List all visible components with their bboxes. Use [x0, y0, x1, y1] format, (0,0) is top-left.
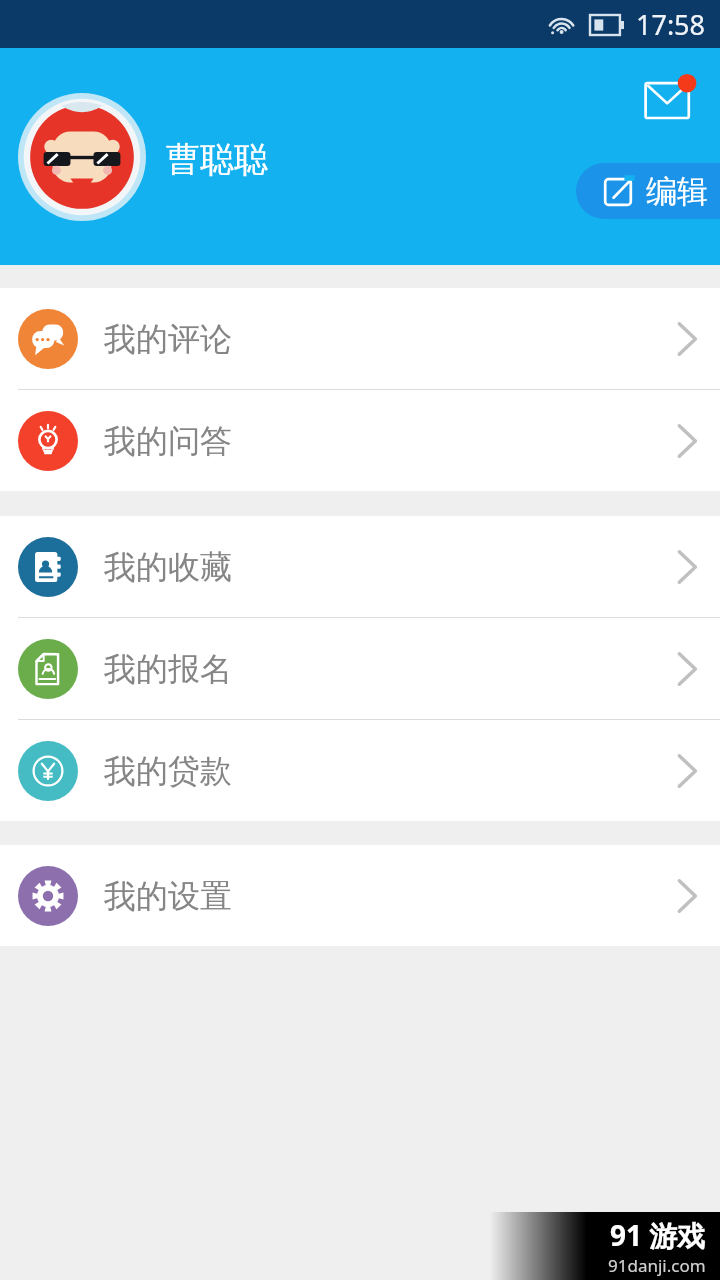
staticText: 我的收藏 [104, 547, 232, 587]
button[interactable]: 我的收藏 [0, 516, 720, 617]
staticText: 17:58 [636, 6, 706, 43]
button[interactable]: Avatar [18, 93, 146, 221]
staticText: 我的问答 [104, 421, 232, 461]
button[interactable]: 编辑 [576, 163, 720, 219]
staticText: 我的贷款 [104, 751, 232, 791]
staticText: 编辑 [646, 172, 708, 211]
button[interactable]: 我的报名 [0, 618, 720, 719]
button[interactable]: Messages [642, 70, 702, 130]
staticText: 我的报名 [104, 649, 232, 689]
button[interactable]: 我的设置 [0, 845, 720, 946]
staticText: 我的评论 [104, 319, 232, 359]
button[interactable]: 我的贷款 [0, 720, 720, 821]
staticText: 我的设置 [104, 876, 232, 916]
button[interactable]: 我的评论 [0, 288, 720, 389]
staticText: 91 游戏 [610, 1216, 706, 1254]
button[interactable]: 我的问答 [0, 390, 720, 491]
staticText: 91danji.com [608, 1254, 706, 1277]
staticText: 曹聪聪 [166, 138, 268, 181]
